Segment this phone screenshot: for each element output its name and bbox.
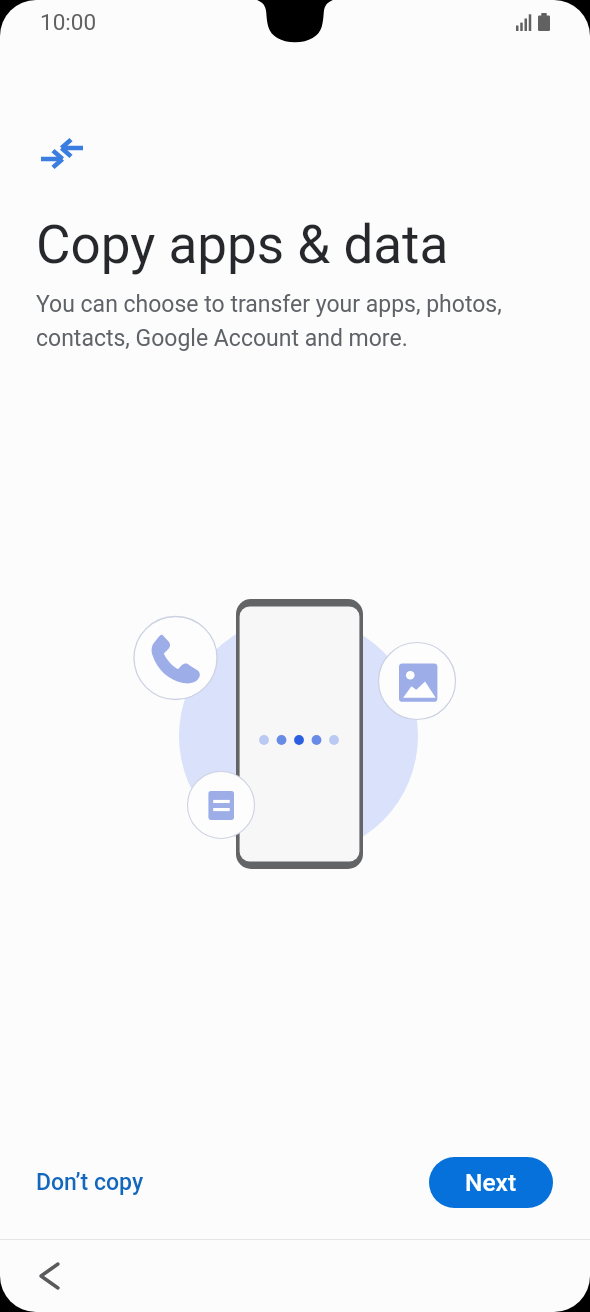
staticText: You can choose to transfer your apps, ph…	[36, 291, 502, 351]
staticText: Next	[465, 1168, 517, 1197]
button[interactable]: Don’t copy	[24, 1159, 156, 1206]
staticText: Copy apps & data	[36, 214, 449, 276]
button[interactable]: Back	[26, 1253, 72, 1299]
staticText: 10:00	[40, 9, 97, 35]
button[interactable]: Next	[429, 1157, 553, 1208]
staticText: Don’t copy	[36, 1169, 144, 1196]
